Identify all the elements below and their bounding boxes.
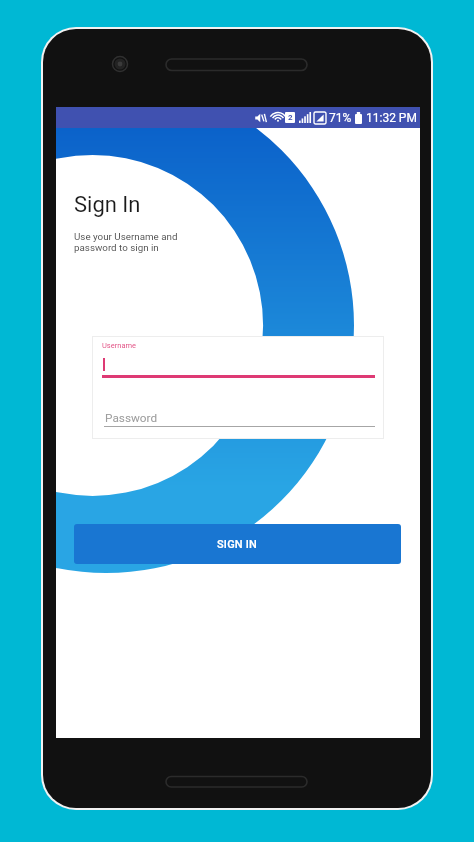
staticText: Password xyxy=(105,411,158,425)
staticText: Username xyxy=(102,341,137,350)
staticText: 2 xyxy=(288,113,293,122)
staticText: SIGN IN xyxy=(217,538,258,551)
staticText: Use your Username and password to sign i… xyxy=(74,231,178,253)
staticText: 11:32 PM xyxy=(366,111,417,125)
staticText: 71% xyxy=(329,111,352,125)
staticText: Sign In xyxy=(74,192,141,218)
button[interactable]: SIGN IN xyxy=(74,524,401,564)
other: Battery xyxy=(355,112,362,124)
other: Muted xyxy=(255,112,267,124)
